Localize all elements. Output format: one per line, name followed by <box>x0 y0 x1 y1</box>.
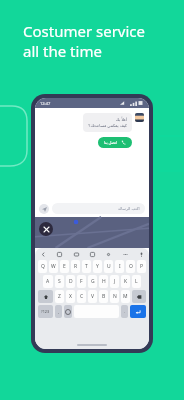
button[interactable]: Clipboard <box>88 250 96 258</box>
staticText: اتصل بنا <box>104 140 118 145</box>
button[interactable]: V <box>88 290 97 303</box>
button[interactable]: اكتب الرسالة <box>52 203 145 214</box>
staticText: D <box>69 278 73 285</box>
staticText: S <box>58 278 61 285</box>
staticText: Costumer service <box>23 21 145 41</box>
button[interactable]: W <box>49 260 58 273</box>
button[interactable]: Settings <box>104 250 112 258</box>
button[interactable]: Q <box>38 260 47 273</box>
button[interactable]: M <box>121 290 130 303</box>
button[interactable]: B <box>99 290 108 303</box>
button[interactable]: More options <box>121 250 129 258</box>
staticText: اكتب الرسالة <box>118 206 140 211</box>
button[interactable]: S <box>55 275 64 288</box>
staticText: أهلاً بك <box>115 117 127 122</box>
staticText: G <box>91 278 95 285</box>
staticText: all the time <box>23 41 102 61</box>
button[interactable]: GIF <box>72 250 80 258</box>
button[interactable]: Enter <box>130 305 146 318</box>
button[interactable]: J <box>110 275 119 288</box>
staticText: R <box>74 263 78 270</box>
staticText: F <box>80 278 83 285</box>
button[interactable]: Send <box>39 204 49 214</box>
button[interactable]: اتصل بنا <box>98 137 132 148</box>
staticText: B <box>102 293 106 300</box>
button[interactable]: Voice input <box>137 250 145 258</box>
button[interactable]: Emoji <box>64 305 72 318</box>
staticText: L <box>135 278 138 285</box>
staticText: ?123 <box>41 309 50 314</box>
staticText: V <box>91 293 95 300</box>
staticText: U <box>107 263 111 270</box>
staticText: N <box>113 293 117 300</box>
button[interactable]: H <box>99 275 108 288</box>
button[interactable]: U <box>104 260 113 273</box>
button[interactable]: A <box>43 275 53 288</box>
button[interactable]: T <box>82 260 91 273</box>
button[interactable]: Stickers <box>55 250 63 258</box>
staticText: A <box>46 278 50 285</box>
button[interactable]: Close <box>39 222 53 236</box>
staticText: M <box>123 293 128 300</box>
button[interactable]: N <box>110 290 119 303</box>
staticText: . <box>124 309 126 314</box>
button[interactable]: I <box>115 260 124 273</box>
button[interactable]: D <box>66 275 75 288</box>
staticText: T <box>85 263 88 270</box>
button[interactable]: Shift <box>38 290 53 303</box>
button[interactable]: K <box>121 275 130 288</box>
button[interactable]: Back <box>39 250 47 258</box>
staticText: Q <box>41 263 45 270</box>
button[interactable]: P <box>137 260 146 273</box>
button[interactable]: F <box>77 275 86 288</box>
staticText: 12:47 <box>40 101 51 106</box>
button[interactable]: ?123 <box>38 305 53 318</box>
staticText: I <box>119 263 121 270</box>
staticText: X <box>69 293 72 300</box>
staticText: W <box>51 263 56 270</box>
button[interactable]: . <box>121 305 128 318</box>
staticText: H <box>102 278 106 285</box>
button[interactable]: E <box>60 260 69 273</box>
button[interactable]: R <box>71 260 80 273</box>
button[interactable]: , <box>55 305 62 318</box>
button[interactable]: Backspace <box>132 290 146 303</box>
button[interactable]: G <box>88 275 97 288</box>
staticText: J <box>114 278 116 285</box>
staticText: K <box>124 278 128 285</box>
button[interactable]: X <box>66 290 75 303</box>
button[interactable]: Y <box>93 260 102 273</box>
staticText: كيف يمكنني مساعدتك؟ <box>88 123 127 128</box>
staticText: O <box>129 263 133 270</box>
staticText: P <box>140 263 144 270</box>
button[interactable]: C <box>77 290 86 303</box>
staticText: , <box>58 309 60 314</box>
staticText: C <box>80 293 84 300</box>
staticText: Y <box>96 263 99 270</box>
staticText: E <box>63 263 66 270</box>
button[interactable]: L <box>132 275 141 288</box>
button[interactable]: Z <box>55 290 64 303</box>
staticText: Z <box>58 293 61 300</box>
button[interactable]: O <box>126 260 135 273</box>
